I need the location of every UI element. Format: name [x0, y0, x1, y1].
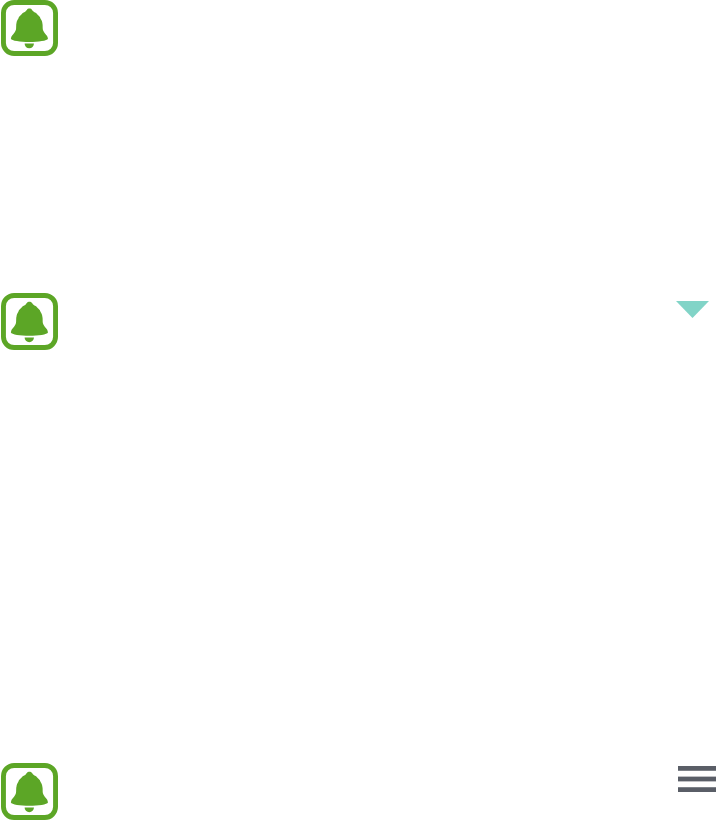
button[interactable]: Notifications — [1, 763, 58, 820]
button[interactable]: Expand — [676, 301, 709, 318]
button[interactable]: Notifications — [1, 293, 58, 350]
button[interactable]: Menu — [678, 766, 716, 792]
button[interactable]: Notifications — [1, 0, 58, 56]
